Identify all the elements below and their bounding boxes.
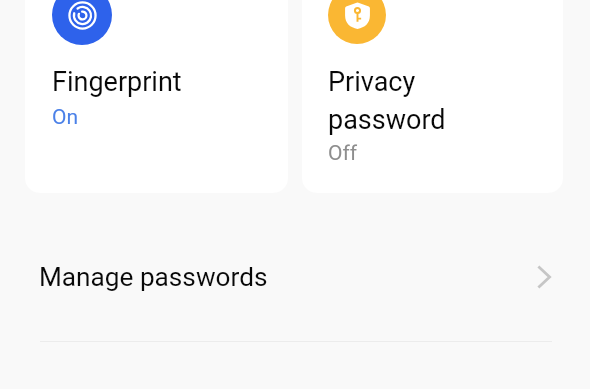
- staticText: Manage passwords: [39, 262, 268, 293]
- button[interactable]: Fingerprint: [25, 0, 288, 193]
- staticText: On: [52, 105, 79, 130]
- staticText: Off: [328, 141, 358, 166]
- button[interactable]: Manage passwords: [0, 237, 590, 317]
- button[interactable]: Privacy password: [302, 0, 563, 193]
- other: Open manage passwords: [538, 266, 551, 288]
- staticText: Fingerprint: [52, 66, 182, 98]
- staticText: Privacy password: [328, 66, 446, 136]
